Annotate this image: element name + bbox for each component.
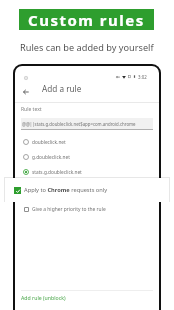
button[interactable]: stats.g.doubleclick.net xyxy=(23,169,153,175)
button[interactable]: Give a higher priority to the rule xyxy=(24,206,153,212)
button[interactable]: g.doubleclick.net xyxy=(23,154,153,160)
button[interactable]: Custom rules xyxy=(19,9,154,30)
staticText: @@||stats.g.doubleclick.net$app=com.andr… xyxy=(22,121,136,127)
staticText: 3:02 xyxy=(138,74,147,80)
staticText: Add a rule xyxy=(42,83,82,94)
button[interactable]: @@||stats.g.doubleclick.net$app=com.andr… xyxy=(21,118,153,130)
button[interactable]: doubleclick.net xyxy=(23,139,153,145)
staticText: g.doubleclick.net xyxy=(32,154,70,160)
staticText: doubleclick.net xyxy=(32,139,66,145)
staticText: Rule text xyxy=(21,106,42,113)
staticText: Rules can be added by yourself xyxy=(20,41,154,54)
button[interactable]: Back xyxy=(19,85,32,98)
button[interactable]: Apply to Chrome requests only xyxy=(5,178,169,202)
staticText: Give a higher priority to the rule xyxy=(32,206,106,212)
staticText: Apply to Chrome requests only xyxy=(24,186,108,194)
staticText: Custom rules xyxy=(28,10,145,30)
button[interactable]: Add rule (unblock) xyxy=(21,294,66,301)
staticText: stats.g.doubleclick.net xyxy=(32,169,82,175)
